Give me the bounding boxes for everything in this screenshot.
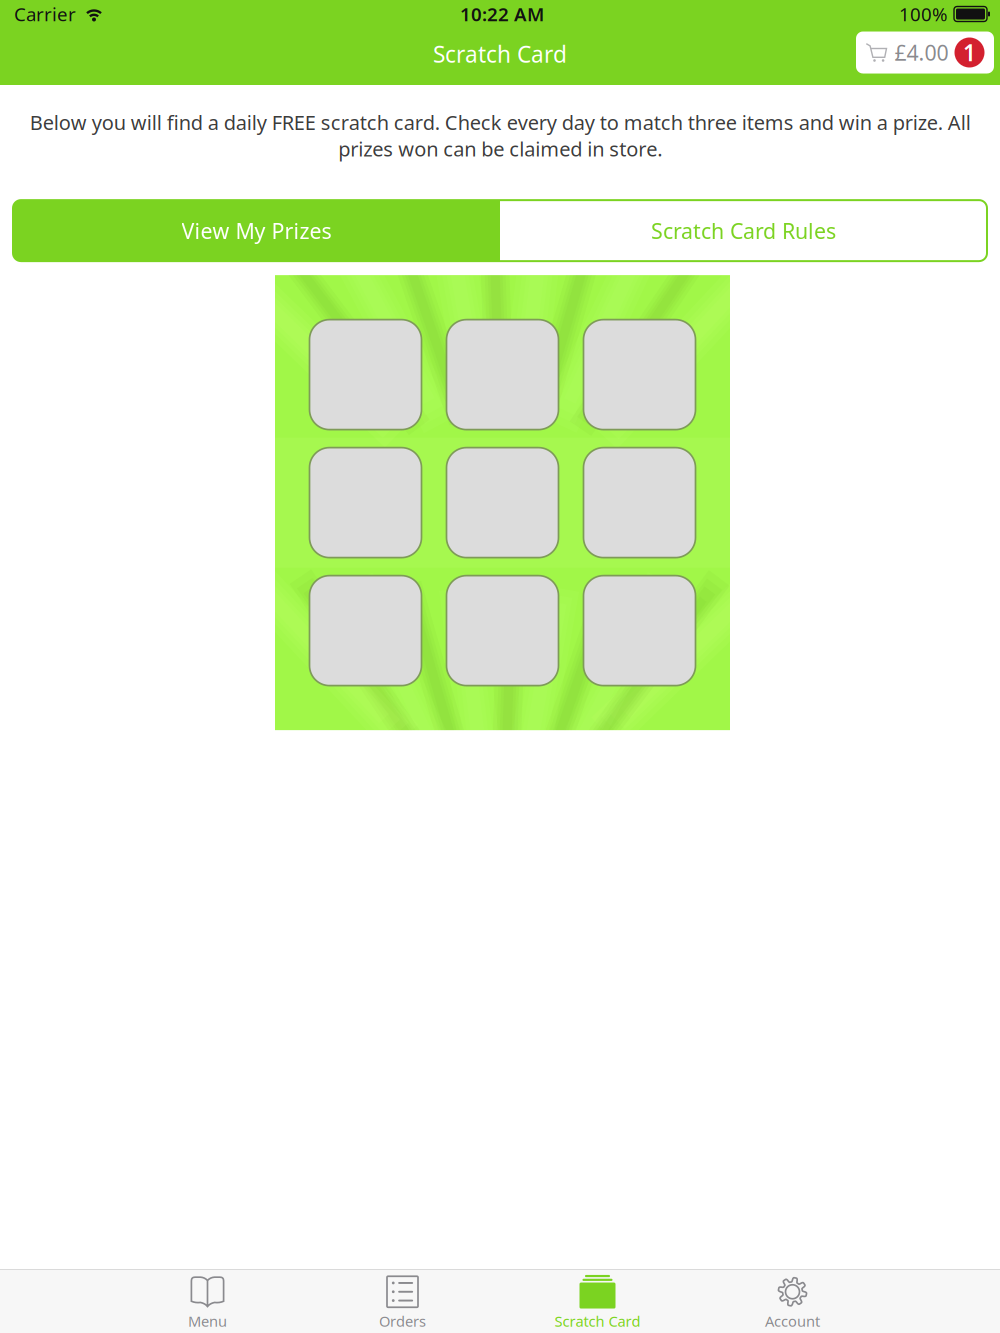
staticText: Carrier xyxy=(14,2,76,26)
button[interactable]: £4.00 xyxy=(856,31,994,73)
staticText: 10:22 AM xyxy=(460,2,544,26)
button[interactable]: Scratch Card Rules xyxy=(500,200,987,261)
button[interactable]: Orders xyxy=(305,1270,500,1333)
staticText: Account xyxy=(765,1311,820,1331)
staticText: Below you will find a daily FREE scratch… xyxy=(29,109,970,162)
staticText: Menu xyxy=(188,1311,227,1331)
staticText: Scratch Card xyxy=(433,39,567,69)
button[interactable]: View My Prizes xyxy=(13,200,500,261)
button[interactable]: Scratch card xyxy=(275,275,730,730)
staticText: 1 xyxy=(963,37,976,67)
button[interactable]: Menu xyxy=(110,1270,305,1333)
staticText: Scratch Card xyxy=(554,1311,640,1331)
staticText: Scratch Card Rules xyxy=(651,216,836,245)
button[interactable]: Scratch Card xyxy=(500,1270,695,1333)
staticText: View My Prizes xyxy=(181,216,331,245)
staticText: £4.00 xyxy=(894,38,948,67)
button[interactable]: Account xyxy=(695,1270,890,1333)
staticText: Orders xyxy=(379,1311,426,1331)
staticText: 100% xyxy=(899,2,948,26)
